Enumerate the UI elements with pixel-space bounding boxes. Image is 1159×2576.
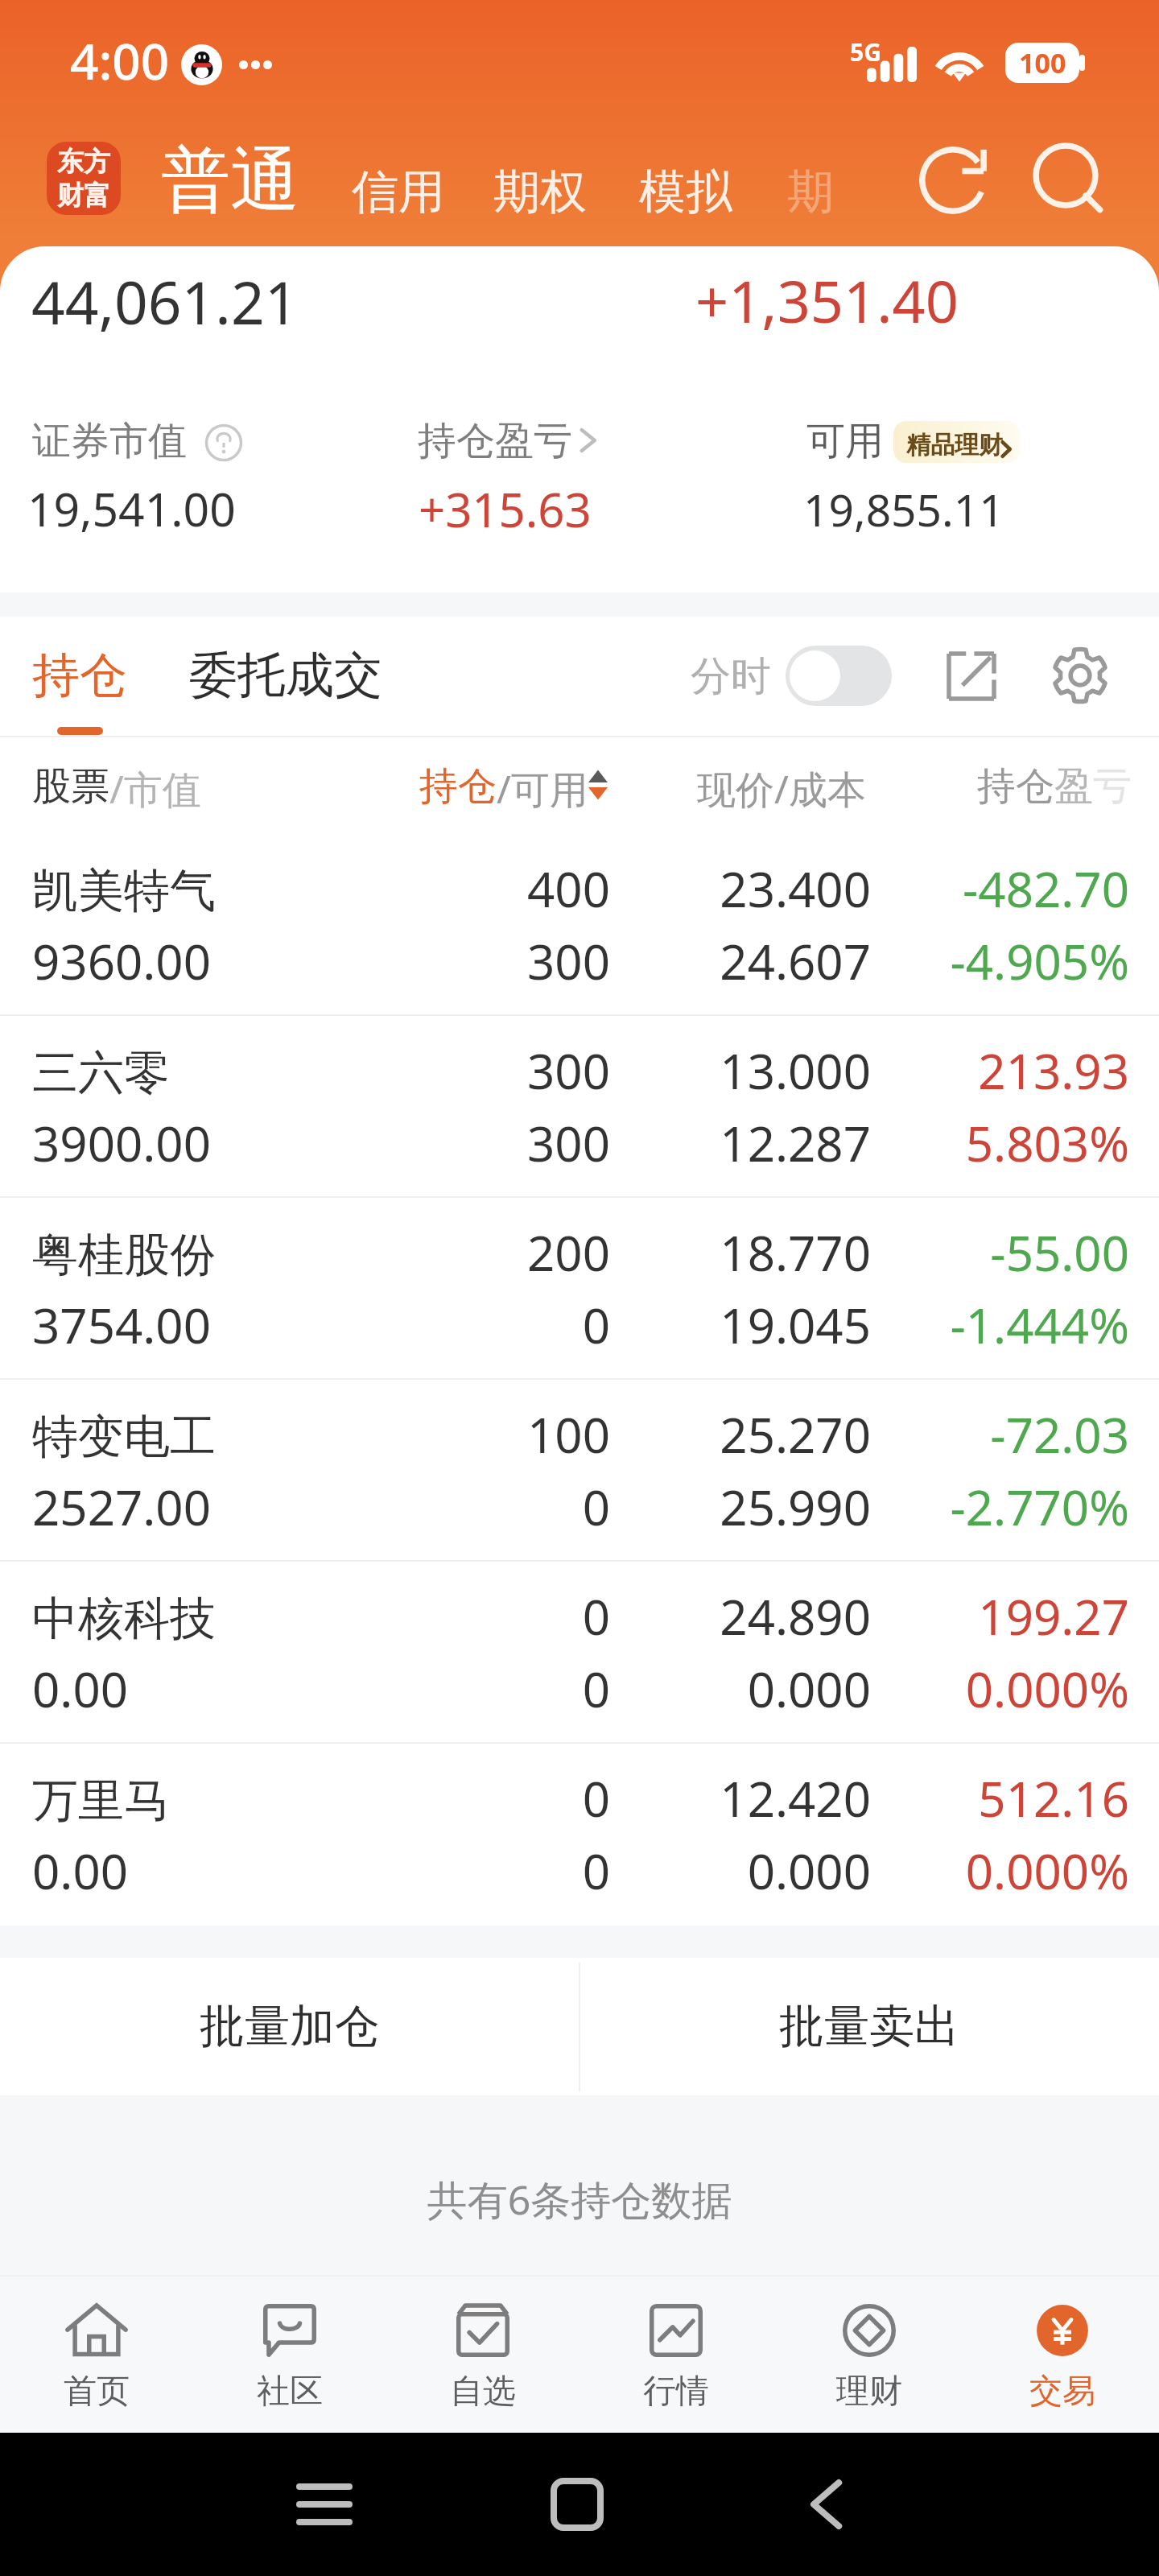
button[interactable]: 行情 <box>579 2277 773 2433</box>
staticText: 12.420 <box>0 1765 871 1831</box>
staticText: -4.905% <box>0 928 1129 994</box>
staticText: 0 <box>0 1656 610 1722</box>
staticText: 首页 <box>64 2371 130 2413</box>
staticText: 12.287 <box>0 1110 871 1176</box>
staticText: 300 <box>0 1110 610 1176</box>
staticText: 0 <box>0 1838 610 1904</box>
staticText: 证券市值 <box>32 417 187 465</box>
staticText: 财富 <box>57 179 110 213</box>
staticText: 4:00 <box>70 27 170 94</box>
staticText: 持仓 <box>419 762 497 811</box>
button[interactable]: 自选 <box>386 2277 579 2433</box>
staticText: 3900.00 <box>32 1110 211 1176</box>
staticText: 分时 <box>691 651 771 702</box>
staticText: 亏 <box>1093 762 1132 811</box>
staticText: 特变电工 <box>32 1408 216 1466</box>
staticText: 三六零 <box>32 1044 170 1102</box>
staticText: 44,061.21 <box>31 262 299 341</box>
button[interactable]: 持仓 <box>0 617 95 676</box>
staticText: 3754.00 <box>32 1292 211 1358</box>
button[interactable]: 精品理财 <box>893 421 1020 463</box>
staticText: -482.70 <box>0 856 1129 922</box>
staticText: +1,351.40 <box>695 261 959 340</box>
button[interactable]: Refresh <box>911 138 995 222</box>
staticText: 25.270 <box>0 1402 871 1468</box>
button[interactable]: East Money <box>47 142 121 215</box>
button[interactable]: 中核科技 <box>0 1562 1159 1744</box>
button[interactable]: 三六零 <box>0 1016 1159 1198</box>
staticText: 5.803% <box>0 1110 1129 1176</box>
staticText: 批量加仓 <box>200 1998 380 2055</box>
button[interactable]: 交易 <box>966 2277 1159 2433</box>
staticText: 19.045 <box>0 1292 871 1358</box>
staticText: 可用 <box>806 417 884 465</box>
button[interactable]: 批量加仓 <box>0 1958 579 2095</box>
staticText: /市值 <box>109 762 201 815</box>
button[interactable]: Settings <box>1046 642 1114 709</box>
button[interactable]: 凯美特气 <box>0 834 1159 1016</box>
staticText: 粤桂股份 <box>32 1226 216 1284</box>
button[interactable]: 委托成交 <box>0 617 193 678</box>
staticText: 交易 <box>1029 2371 1095 2413</box>
button[interactable]: 期权 <box>0 0 93 59</box>
staticText: 盈 <box>1054 762 1093 811</box>
staticText: -55.00 <box>0 1220 1129 1286</box>
staticText: 25.990 <box>0 1474 871 1540</box>
staticText: 万里马 <box>32 1772 170 1830</box>
staticText: 0.000 <box>0 1838 871 1904</box>
staticText: 18.770 <box>0 1220 871 1286</box>
button[interactable]: 社区 <box>193 2277 386 2433</box>
staticText: 19,855.11 <box>803 479 1004 539</box>
staticText: 中核科技 <box>32 1590 216 1648</box>
button[interactable]: 信用 <box>0 0 93 59</box>
staticText: 精品理财 <box>906 430 1003 460</box>
staticText: 0 <box>0 1474 610 1540</box>
button[interactable]: 万里马 <box>0 1744 1159 1926</box>
staticText: +315.63 <box>419 477 592 541</box>
staticText: 300 <box>0 1038 610 1104</box>
staticText: 23.400 <box>0 856 871 922</box>
staticText: -2.770% <box>0 1474 1129 1540</box>
staticText: 现价/成本 <box>697 762 866 815</box>
staticText: 13.000 <box>0 1038 871 1104</box>
button[interactable]: Search <box>1024 134 1107 217</box>
staticText: 24.890 <box>0 1583 871 1649</box>
staticText: 200 <box>0 1220 610 1286</box>
button[interactable]: 理财 <box>773 2277 966 2433</box>
staticText: 0 <box>0 1765 610 1831</box>
button[interactable]: 粤桂股份 <box>0 1198 1159 1380</box>
staticText: 持仓 <box>977 762 1054 811</box>
button[interactable]: 特变电工 <box>0 1380 1159 1562</box>
button[interactable]: 模拟 <box>0 0 93 59</box>
button[interactable]: Back <box>778 2456 875 2553</box>
staticText: 东方 <box>57 145 110 179</box>
staticText: 0.000% <box>0 1838 1129 1904</box>
staticText: 213.93 <box>0 1038 1129 1104</box>
staticText: 0.000 <box>0 1656 871 1722</box>
staticText: 社区 <box>257 2371 323 2413</box>
button[interactable]: 批量卖出 <box>579 1958 1159 2095</box>
staticText: /可用 <box>497 762 588 815</box>
staticText: 持仓盈亏 <box>418 417 572 465</box>
button[interactable]: 首页 <box>0 2277 193 2433</box>
staticText: 0.00 <box>32 1838 129 1904</box>
staticText: 0.00 <box>32 1656 129 1722</box>
staticText: 512.16 <box>0 1765 1129 1831</box>
staticText: 2527.00 <box>32 1474 211 1540</box>
button[interactable]: Toggle minute view <box>786 646 892 706</box>
button[interactable]: 普通 <box>0 0 138 87</box>
staticText: 0.000% <box>0 1656 1129 1722</box>
staticText: 100 <box>0 1402 610 1468</box>
staticText: 共有6条持仓数据 <box>0 2172 1159 2227</box>
staticText: 24.607 <box>0 928 871 994</box>
staticText: -72.03 <box>0 1402 1129 1468</box>
staticText: 300 <box>0 928 610 994</box>
button[interactable]: Home <box>529 2456 625 2553</box>
staticText: 0 <box>0 1583 610 1649</box>
staticText: 5G <box>850 35 881 68</box>
staticText: 0 <box>0 1292 610 1358</box>
staticText: 9360.00 <box>32 928 211 994</box>
button[interactable]: Recents <box>276 2456 373 2553</box>
button[interactable]: Share <box>938 643 1004 709</box>
